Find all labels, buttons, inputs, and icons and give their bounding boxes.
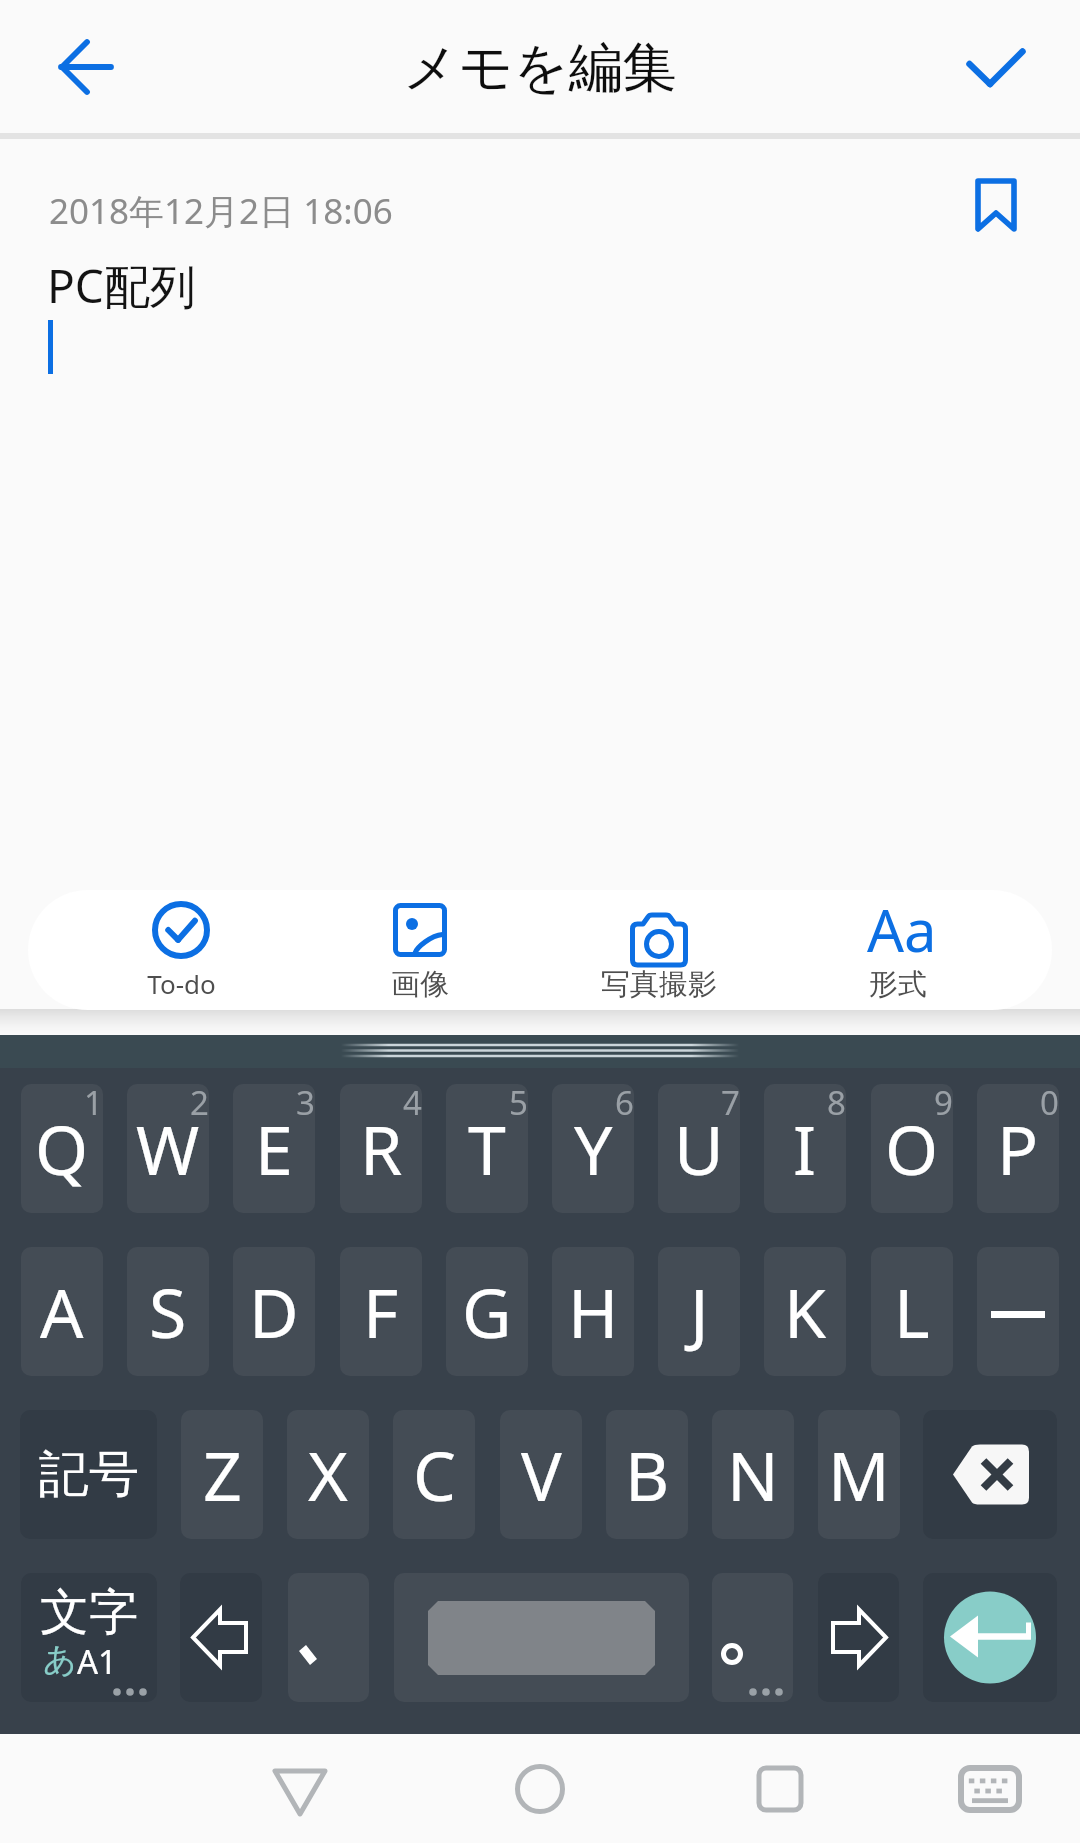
staticText: J: [690, 1265, 709, 1358]
button[interactable]: Enter: [923, 1573, 1057, 1702]
staticText: 記号: [39, 1443, 139, 1506]
staticText: あ: [43, 1639, 77, 1681]
button[interactable]: Space: [394, 1573, 689, 1702]
staticText: A1: [77, 1639, 117, 1684]
staticText: 画像: [391, 966, 449, 1003]
staticText: 0: [1040, 1080, 1059, 1120]
staticText: 5: [509, 1080, 528, 1120]
button[interactable]: J: [658, 1247, 740, 1376]
staticText: 形式: [869, 966, 927, 1003]
staticText: 8: [827, 1080, 846, 1120]
button[interactable]: P: [977, 1084, 1059, 1213]
staticText: D: [249, 1265, 299, 1358]
staticText: A: [40, 1265, 84, 1358]
staticText: 3: [296, 1080, 315, 1120]
button[interactable]: Done: [936, 6, 1054, 124]
button[interactable]: Cursor left: [180, 1573, 262, 1702]
button[interactable]: D: [233, 1247, 315, 1376]
staticText: メモを編集: [403, 34, 677, 102]
staticText: I: [793, 1102, 817, 1195]
staticText: F: [363, 1265, 399, 1358]
button[interactable]: Keyboard: [935, 1734, 1045, 1843]
staticText: 2: [190, 1080, 209, 1120]
button[interactable]: K: [764, 1247, 846, 1376]
button[interactable]: G: [446, 1247, 528, 1376]
staticText: To-do: [147, 966, 216, 1001]
staticText: T: [468, 1102, 506, 1195]
staticText: PC配列: [47, 254, 196, 317]
button[interactable]: H: [552, 1247, 634, 1376]
button[interactable]: W: [127, 1084, 209, 1213]
button[interactable]: Back: [24, 7, 144, 127]
staticText: S: [149, 1265, 187, 1358]
button[interactable]: 画像: [310, 890, 530, 1010]
staticText: 7: [721, 1080, 740, 1120]
button[interactable]: C: [393, 1410, 475, 1539]
button[interactable]: 写真撮影: [549, 890, 769, 1010]
button[interactable]: F: [340, 1247, 422, 1376]
button[interactable]: A: [21, 1247, 103, 1376]
staticText: E: [255, 1102, 293, 1195]
staticText: U: [674, 1102, 724, 1195]
button[interactable]: 記号: [20, 1410, 157, 1539]
button[interactable]: 文字: [21, 1573, 157, 1702]
button[interactable]: B: [606, 1410, 688, 1539]
button[interactable]: Home: [485, 1734, 595, 1843]
staticText: C: [413, 1428, 456, 1521]
button[interactable]: R: [340, 1084, 422, 1213]
staticText: N: [727, 1428, 779, 1521]
button[interactable]: Z: [181, 1410, 263, 1539]
button[interactable]: E: [233, 1084, 315, 1213]
button[interactable]: V: [500, 1410, 582, 1539]
button[interactable]: Period: [712, 1573, 793, 1702]
button[interactable]: I: [764, 1084, 846, 1213]
staticText: Y: [574, 1102, 613, 1195]
staticText: 4: [403, 1080, 422, 1120]
staticText: V: [521, 1428, 562, 1521]
staticText: X: [308, 1428, 348, 1521]
button[interactable]: N: [712, 1410, 794, 1539]
staticText: 文字: [40, 1582, 138, 1644]
staticText: M: [828, 1428, 890, 1521]
staticText: L: [894, 1265, 930, 1358]
button[interactable]: Back: [245, 1734, 355, 1843]
button[interactable]: Comma: [288, 1573, 369, 1702]
staticText: O: [885, 1102, 939, 1195]
staticText: Aa: [867, 890, 937, 969]
button[interactable]: M: [818, 1410, 900, 1539]
button[interactable]: To-do: [71, 890, 291, 1010]
staticText: 9: [934, 1080, 953, 1120]
staticText: G: [462, 1265, 512, 1358]
button[interactable]: Y: [552, 1084, 634, 1213]
staticText: B: [625, 1428, 670, 1521]
button[interactable]: L: [871, 1247, 953, 1376]
button[interactable]: Cursor right: [818, 1573, 899, 1702]
staticText: 6: [615, 1080, 634, 1120]
staticText: R: [360, 1102, 403, 1195]
button[interactable]: Long vowel mark: [977, 1247, 1059, 1376]
staticText: K: [784, 1265, 827, 1358]
button[interactable]: Q: [21, 1084, 103, 1213]
staticText: Z: [203, 1428, 242, 1521]
button[interactable]: U: [658, 1084, 740, 1213]
staticText: 1: [84, 1080, 103, 1120]
staticText: H: [568, 1265, 619, 1358]
button[interactable]: Recents: [725, 1734, 835, 1843]
staticText: Q: [35, 1102, 89, 1195]
button[interactable]: T: [446, 1084, 528, 1213]
staticText: 写真撮影: [601, 966, 717, 1003]
button[interactable]: Backspace: [923, 1410, 1057, 1539]
staticText: 2018年12月2日 18:06: [49, 187, 393, 235]
staticText: W: [136, 1102, 200, 1195]
button[interactable]: Aa: [788, 890, 1008, 1010]
button[interactable]: O: [871, 1084, 953, 1213]
button[interactable]: S: [127, 1247, 209, 1376]
staticText: P: [997, 1102, 1039, 1195]
button[interactable]: Bookmark: [955, 158, 1051, 254]
button[interactable]: X: [287, 1410, 369, 1539]
